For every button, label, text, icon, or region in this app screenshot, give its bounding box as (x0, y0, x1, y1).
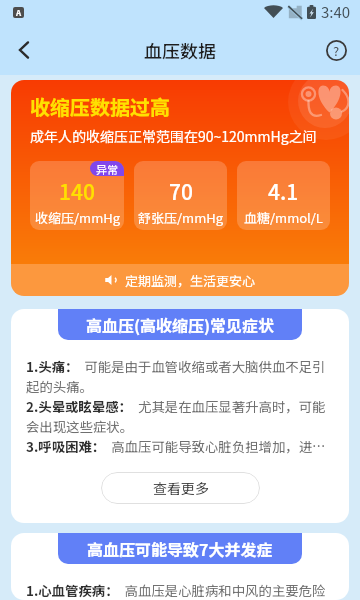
staticText: 70 (169, 176, 193, 206)
staticText: 血压数据 (144, 37, 216, 63)
button[interactable]: 查看更多 (101, 472, 260, 504)
staticText: 1.心血管疾病： 高血压是心脏病和中风的主要危险 (26, 580, 326, 599)
staticText: 血糖/mmol/L (244, 208, 323, 227)
staticText: 舒张压/mmHg (138, 208, 223, 227)
staticText: 查看更多 (153, 478, 209, 498)
staticText: 成年人的收缩压正常范围在90~120mmHg之间 (30, 126, 317, 146)
staticText: 1.头痛： 可能是由于血管收缩或者大脑供血不足引起的头痛。 (26, 356, 334, 396)
staticText: 4.1 (268, 176, 299, 206)
staticText: 140 (59, 176, 95, 206)
staticText: 高血压可能导致7大并发症 (87, 537, 273, 560)
staticText: 收缩压/mmHg (35, 208, 120, 227)
button[interactable]: Back (0, 26, 48, 74)
staticText: 2.头晕或眩晕感： 尤其是在血压显著升高时，可能会出现这些症状。 (26, 396, 334, 436)
staticText: A (16, 7, 22, 18)
staticText: 高血压(高收缩压)常见症状 (86, 313, 275, 336)
button[interactable]: 定期监测，生活更安心 (11, 264, 349, 296)
staticText: 3:40 (321, 1, 351, 23)
staticText: 定期监测，生活更安心 (125, 271, 256, 290)
staticText: 收缩压数据过高 (30, 92, 170, 121)
staticText: ? (333, 41, 340, 60)
staticText: 异常 (96, 161, 118, 176)
staticText: 3.呼吸困难： 高血压可能导致心脏负担增加，进… (26, 436, 326, 455)
button[interactable]: Help (312, 26, 360, 74)
